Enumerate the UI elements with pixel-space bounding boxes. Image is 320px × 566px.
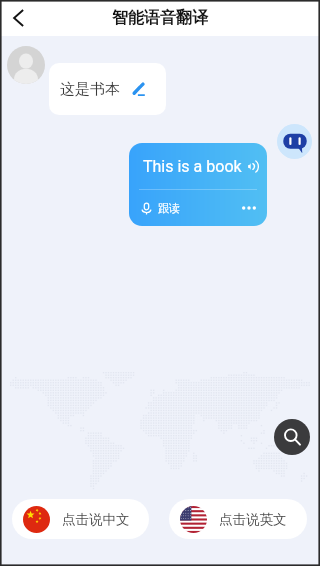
button[interactable]: 点击说英文 (169, 499, 307, 539)
staticText: 跟读 (158, 201, 180, 215)
button[interactable]: Back (0, 0, 36, 36)
staticText: 点击说英文 (219, 511, 287, 528)
button[interactable]: 这是书本 (49, 63, 166, 115)
button[interactable]: Search (274, 419, 310, 455)
staticText: 这是书本 (60, 80, 120, 99)
staticText: This is a book (143, 157, 242, 176)
button[interactable]: This is a book (129, 143, 267, 226)
button[interactable]: 点击说中文 (12, 499, 149, 539)
staticText: 智能语音翻译 (112, 8, 208, 28)
staticText: 点击说中文 (62, 511, 130, 528)
